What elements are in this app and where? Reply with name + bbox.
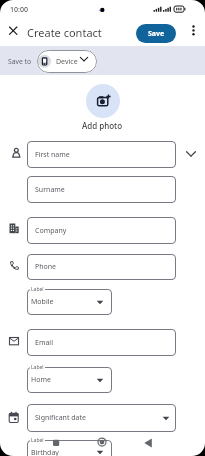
button[interactable] bbox=[6, 23, 21, 38]
button[interactable]: Surname bbox=[27, 176, 176, 203]
button[interactable]: Mobile bbox=[27, 289, 112, 315]
staticText: Significant date bbox=[35, 413, 86, 423]
staticText: Phone bbox=[35, 262, 57, 272]
staticText: Label bbox=[31, 437, 44, 444]
button[interactable] bbox=[86, 84, 120, 118]
staticText: Add photo bbox=[82, 120, 123, 131]
staticText: Label bbox=[31, 286, 44, 293]
button[interactable] bbox=[183, 146, 199, 162]
button[interactable]: Significant date bbox=[27, 404, 176, 432]
button[interactable] bbox=[187, 23, 200, 38]
staticText: Company bbox=[35, 226, 67, 236]
staticText: Device bbox=[56, 57, 78, 67]
staticText: First name bbox=[35, 150, 70, 160]
button[interactable]: Device bbox=[37, 50, 97, 73]
button[interactable]: Home bbox=[27, 367, 112, 393]
staticText: Birthday bbox=[31, 448, 59, 456]
staticText: Save bbox=[148, 29, 165, 39]
button[interactable]: Birthday bbox=[27, 440, 112, 456]
staticText: Label bbox=[31, 364, 44, 371]
button[interactable]: First name bbox=[27, 141, 176, 168]
button[interactable]: Phone bbox=[27, 254, 176, 280]
staticText: Home bbox=[31, 375, 51, 385]
button[interactable]: Save bbox=[136, 24, 176, 43]
staticText: Surname bbox=[35, 185, 65, 195]
staticText: Save to bbox=[8, 57, 32, 66]
staticText: Create contact bbox=[27, 25, 102, 40]
staticText: Email bbox=[35, 338, 53, 348]
button[interactable]: Company bbox=[27, 217, 176, 244]
button[interactable]: Email bbox=[27, 329, 176, 356]
staticText: 10:00 bbox=[10, 5, 28, 15]
staticText: Mobile bbox=[31, 297, 54, 307]
